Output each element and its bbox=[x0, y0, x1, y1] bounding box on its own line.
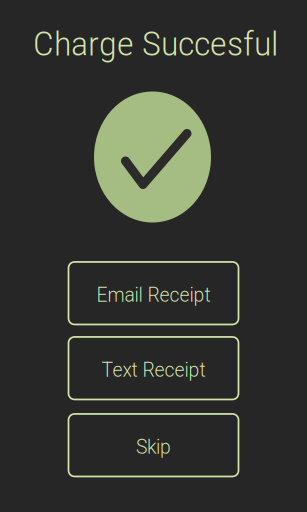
button[interactable]: Email Receipt bbox=[68, 262, 238, 324]
staticText: Text Receipt bbox=[101, 359, 205, 382]
staticText: Email Receipt bbox=[96, 284, 210, 307]
button[interactable]: Text Receipt bbox=[68, 337, 238, 399]
staticText: Skip bbox=[136, 436, 171, 459]
staticText: Charge Succesful bbox=[33, 24, 278, 64]
button[interactable]: Skip bbox=[68, 414, 238, 476]
